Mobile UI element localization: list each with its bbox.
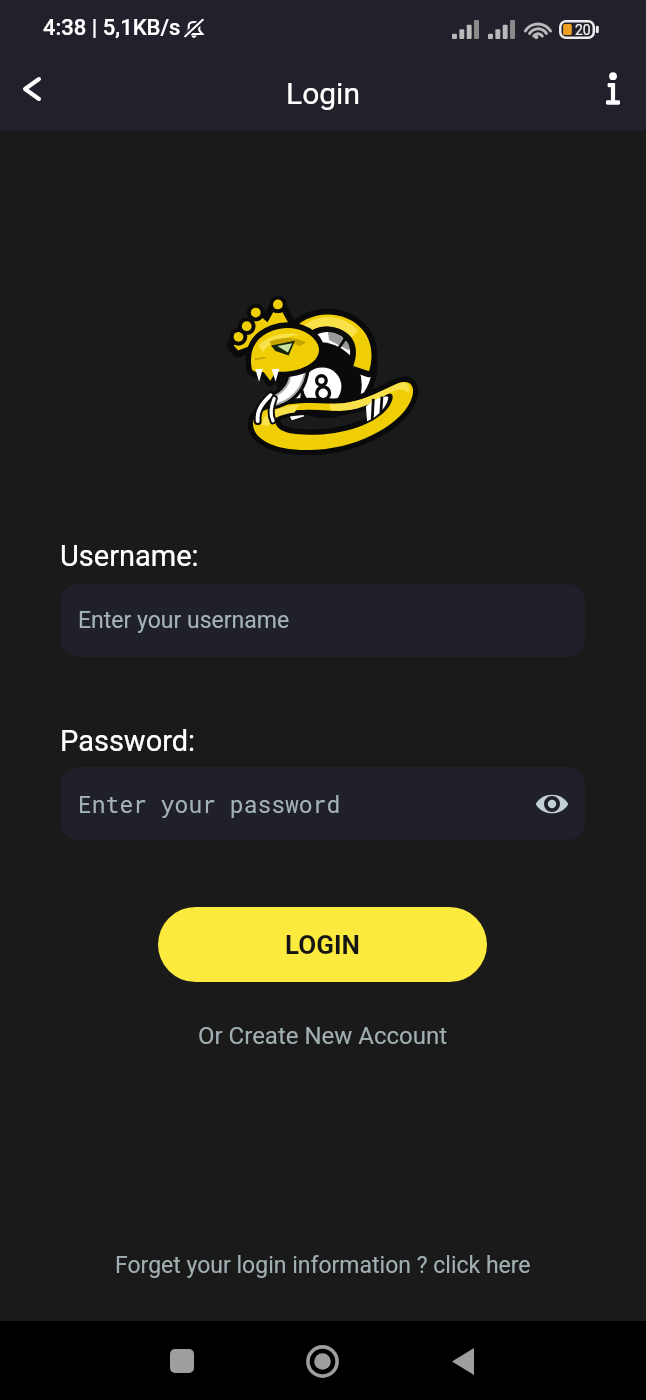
button[interactable]: Or Create New Account — [188, 1016, 458, 1056]
button[interactable]: Back — [6, 63, 58, 115]
button[interactable]: LOGIN — [158, 907, 487, 982]
button[interactable]: Recents — [152, 1331, 212, 1391]
staticText: LOGIN — [285, 930, 360, 960]
button[interactable]: Enter your password — [61, 767, 585, 840]
staticText: Or Create New Account — [198, 1022, 448, 1050]
staticText: Login — [286, 76, 360, 111]
staticText: Enter your password — [78, 789, 341, 819]
staticText: Enter your username — [78, 607, 290, 634]
staticText: 4:38 | 5,1KB/s — [43, 15, 181, 41]
button[interactable]: Enter your username — [61, 584, 585, 657]
staticText: Forget your login information ? click he… — [115, 1252, 531, 1279]
button[interactable]: Back — [433, 1331, 493, 1391]
staticText: Password: — [60, 724, 196, 758]
button[interactable]: Forget your login information ? click he… — [105, 1244, 541, 1287]
button[interactable]: Show password — [528, 780, 576, 828]
button[interactable]: Info — [587, 62, 639, 114]
button[interactable]: Home — [292, 1331, 352, 1391]
staticText: Username: — [60, 539, 199, 573]
staticText: 20 — [575, 22, 591, 38]
